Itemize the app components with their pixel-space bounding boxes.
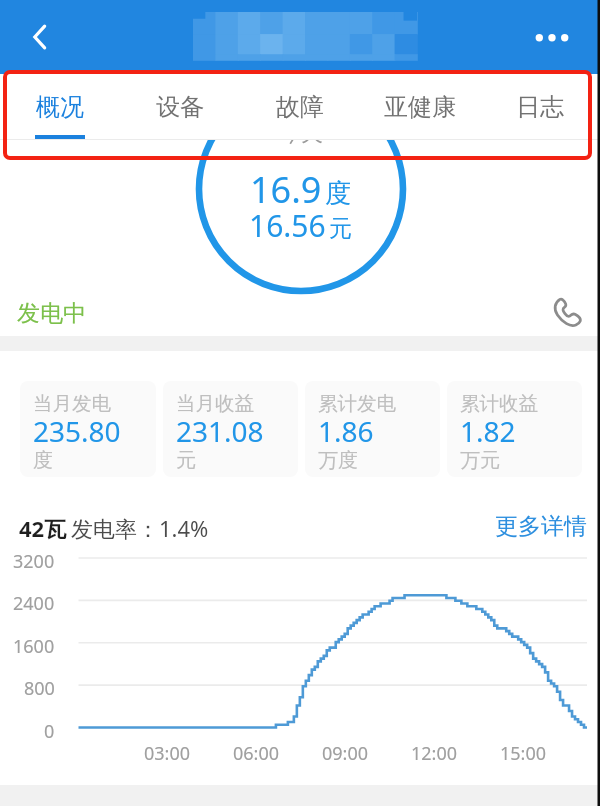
staticText: 231.08 bbox=[176, 412, 264, 450]
staticText: 2400 bbox=[13, 591, 55, 616]
staticText: 设备 bbox=[156, 92, 204, 122]
staticText: 15:00 bbox=[500, 741, 547, 766]
staticText: 亚健康 bbox=[384, 92, 456, 122]
staticText: 累计收益 bbox=[460, 391, 538, 416]
staticText: 12:00 bbox=[411, 741, 458, 766]
staticText: 3200 bbox=[13, 549, 55, 574]
staticText: 今天 bbox=[279, 120, 323, 148]
button[interactable]: 当月发电 bbox=[20, 381, 156, 477]
button[interactable]: 设备 bbox=[120, 74, 240, 140]
button[interactable]: Back bbox=[18, 15, 62, 59]
button[interactable]: 概况 bbox=[0, 74, 120, 140]
staticText: 发电率：1.4% bbox=[71, 513, 209, 543]
staticText: 元 bbox=[176, 448, 196, 473]
button[interactable]: 亚健康 bbox=[360, 74, 480, 140]
staticText: 09:00 bbox=[322, 741, 369, 766]
staticText: 当月收益 bbox=[176, 391, 254, 416]
button[interactable]: 日志 bbox=[480, 74, 600, 140]
staticText: 更多详情 bbox=[495, 512, 587, 541]
staticText: 16.56 bbox=[249, 205, 326, 246]
staticText: 800 bbox=[24, 676, 55, 701]
button[interactable]: More options bbox=[528, 13, 576, 61]
staticText: 1.86 bbox=[318, 412, 374, 450]
staticText: 万元 bbox=[460, 448, 500, 473]
staticText: 0 bbox=[44, 719, 55, 744]
staticText: 度 bbox=[33, 448, 53, 473]
staticText: 日志 bbox=[516, 92, 564, 122]
staticText: 1.82 bbox=[460, 412, 516, 450]
staticText: 概况 bbox=[36, 92, 84, 122]
staticText: 发电中 bbox=[17, 299, 86, 328]
staticText: 03:00 bbox=[144, 741, 191, 766]
button[interactable]: Call service bbox=[543, 290, 591, 336]
staticText: 万度 bbox=[318, 448, 358, 473]
staticText: 42瓦 bbox=[19, 513, 67, 543]
button[interactable]: 累计发电 bbox=[305, 381, 440, 477]
button[interactable]: 当月收益 bbox=[163, 381, 298, 477]
staticText: 06:00 bbox=[233, 741, 280, 766]
staticText: 当月发电 bbox=[33, 391, 111, 416]
staticText: 故障 bbox=[276, 92, 324, 122]
staticText: 235.80 bbox=[33, 412, 121, 450]
staticText: 16.9 bbox=[250, 165, 322, 214]
button[interactable]: 故障 bbox=[240, 74, 360, 140]
button[interactable]: 更多详情 bbox=[495, 512, 587, 541]
staticText: 元 bbox=[329, 214, 352, 243]
staticText: 1600 bbox=[13, 634, 55, 659]
button[interactable]: 累计收益 bbox=[447, 381, 582, 477]
staticText: 度 bbox=[325, 177, 351, 210]
staticText: 累计发电 bbox=[318, 391, 396, 416]
